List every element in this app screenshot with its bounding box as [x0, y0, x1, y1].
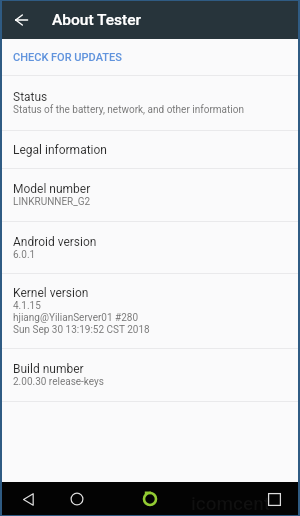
button[interactable]: Build number [2, 349, 298, 401]
staticText: Legal information [13, 143, 107, 157]
staticText: Status [13, 90, 48, 104]
staticText: Kernel version [13, 286, 89, 300]
staticText: 6.0.1 [13, 249, 36, 261]
staticText: Build number [13, 362, 84, 376]
staticText: 4.1.15 [13, 300, 41, 312]
button[interactable]: Legal information [2, 131, 298, 168]
button[interactable]: Status [2, 76, 298, 130]
staticText: About Tester [52, 11, 142, 29]
staticText: hjiang@YilianServer01 #280 [13, 312, 139, 324]
button[interactable]: Back [14, 485, 42, 513]
button[interactable]: Model number [2, 169, 298, 221]
staticText: 2.00.30 release-keys [13, 376, 104, 388]
staticText: icomcent [191, 492, 271, 514]
button[interactable]: Home [63, 485, 91, 513]
staticText: Status of the battery, network, and othe… [13, 104, 244, 116]
staticText: CHECK FOR UPDATES [13, 51, 122, 64]
staticText: LINKRUNNER_G2 [13, 196, 91, 208]
button[interactable]: Android version [2, 222, 298, 273]
button[interactable]: Kernel version [2, 274, 298, 348]
button[interactable]: Navigate up [2, 1, 40, 39]
button[interactable]: Assistant [136, 485, 164, 513]
button[interactable]: CHECK FOR UPDATES [2, 39, 298, 75]
staticText: Android version [13, 235, 97, 249]
staticText: Sun Sep 30 13:19:52 CST 2018 [13, 324, 150, 336]
button[interactable]: Recent apps [260, 485, 288, 513]
staticText: Model number [13, 182, 91, 196]
